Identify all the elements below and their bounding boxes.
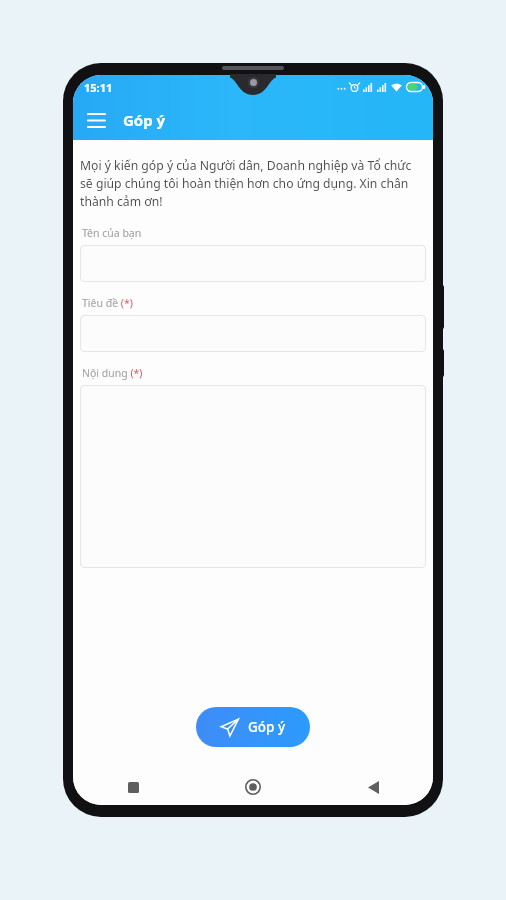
button[interactable]: Home: [193, 769, 313, 805]
button[interactable]: Góp ý: [196, 707, 310, 747]
staticText: Góp ý: [248, 718, 286, 736]
staticText: Nội dung (*): [82, 366, 143, 380]
staticText: Mọi ý kiến góp ý của Người dân, Doanh ng…: [80, 157, 426, 210]
staticText: 15:11: [84, 80, 113, 95]
staticText: Góp ý: [123, 110, 166, 130]
button[interactable]: Open navigation menu: [79, 103, 113, 137]
staticText: Tiêu đề (*): [82, 296, 133, 310]
staticText: Tên của bạn: [82, 226, 142, 240]
button[interactable]: Back: [313, 769, 433, 805]
button[interactable]: [80, 245, 426, 282]
button[interactable]: Recent apps: [73, 769, 193, 805]
button[interactable]: [80, 315, 426, 352]
